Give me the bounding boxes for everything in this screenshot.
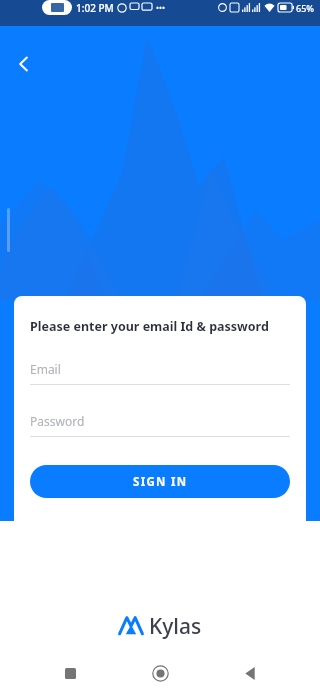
- staticText: •••: [156, 2, 166, 13]
- staticText: Kylas: [149, 612, 202, 641]
- staticText: 1:02 PM: [76, 1, 114, 15]
- button[interactable]: Back: [230, 653, 270, 693]
- staticText: Password: [30, 413, 85, 429]
- staticText: SIGN IN: [133, 474, 188, 490]
- button[interactable]: Recents: [50, 653, 90, 693]
- staticText: Please enter your email Id & password: [30, 318, 269, 335]
- staticText: Email: [30, 361, 61, 377]
- button[interactable]: Home: [140, 653, 180, 693]
- staticText: 65%: [296, 2, 314, 14]
- button[interactable]: Back: [4, 44, 44, 84]
- button[interactable]: SIGN IN: [30, 465, 290, 498]
